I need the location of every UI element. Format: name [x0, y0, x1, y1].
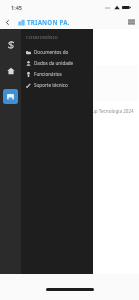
- button[interactable]: Home: [3, 63, 18, 78]
- staticText: Suporte técnico: [34, 82, 68, 88]
- button[interactable]: Funcionários: [21, 68, 93, 79]
- staticText: 1:45: [11, 4, 22, 11]
- button[interactable]: Back: [0, 15, 14, 29]
- staticText: Documentos do condomínio: [34, 49, 91, 55]
- button[interactable]: Menu: [123, 14, 139, 29]
- button[interactable]: Condominium: [3, 89, 18, 104]
- button[interactable]: Finance: [3, 37, 18, 52]
- staticText: Group Tecnologia 2024: [84, 108, 134, 114]
- button[interactable]: Suporte técnico: [21, 79, 93, 90]
- staticText: TRIANON PA.: [27, 18, 70, 26]
- staticText: CONDOMÍNIO: [26, 35, 59, 41]
- staticText: Funcionários: [34, 71, 62, 77]
- button[interactable]: TRIANON PA.: [18, 18, 70, 26]
- button[interactable]: Documentos do condomínio: [21, 46, 93, 57]
- button[interactable]: Dados da unidade: [21, 57, 93, 68]
- staticText: Dados da unidade: [34, 60, 74, 66]
